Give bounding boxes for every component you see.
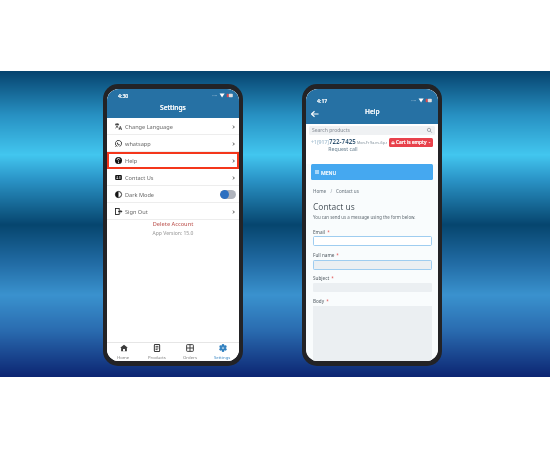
button[interactable]: Home: [313, 188, 327, 194]
staticText: whatsapp: [125, 140, 151, 148]
staticText: 4:17: [317, 97, 328, 104]
button[interactable]: Products: [140, 343, 173, 361]
staticText: Full name: [313, 252, 335, 258]
staticText: Products: [148, 354, 166, 360]
button[interactable]: MENU: [311, 164, 433, 180]
staticText: Change Language: [125, 123, 173, 131]
staticText: Contact us: [336, 188, 359, 194]
staticText: Dark Mode: [125, 191, 155, 199]
staticText: /: [327, 188, 336, 194]
button[interactable]: Search products: [309, 126, 435, 135]
staticText: +1(917): [311, 138, 329, 145]
button[interactable]: Home: [107, 343, 140, 361]
button[interactable]: Settings: [206, 343, 239, 361]
button[interactable]: [313, 236, 432, 246]
staticText: Settings: [160, 103, 186, 112]
staticText: Orders: [183, 354, 197, 360]
staticText: 722-7425: [329, 137, 356, 145]
staticText: *: [326, 229, 330, 235]
button[interactable]: Back: [309, 108, 320, 119]
staticText: *: [335, 252, 339, 258]
staticText: 4:30: [118, 92, 129, 99]
staticText: Contact us: [313, 201, 355, 212]
staticText: Help: [365, 107, 380, 116]
staticText: *: [330, 275, 334, 281]
button[interactable]: Cart is empty: [389, 138, 433, 147]
staticText: Help: [125, 157, 138, 165]
staticText: Mon-Fr 9a.m.-6p.m.: [357, 140, 387, 145]
button[interactable]: Orders: [173, 343, 206, 361]
button[interactable]: [313, 260, 432, 270]
staticText: Contact Us: [125, 174, 154, 182]
staticText: Subject: [313, 275, 330, 281]
button[interactable]: Contact Us: [107, 169, 239, 186]
staticText: Cart is empty: [396, 139, 427, 146]
button[interactable]: Request call: [306, 145, 381, 152]
button[interactable]: Sign Out: [107, 203, 239, 220]
button[interactable]: Change Language: [107, 118, 239, 135]
button[interactable]: Help: [107, 152, 239, 169]
staticText: Search products: [312, 127, 350, 134]
staticText: Body: [313, 298, 325, 304]
staticText: Email: [313, 229, 326, 235]
staticText: You can send us a message using the form…: [313, 214, 416, 220]
staticText: Sign Out: [125, 208, 148, 216]
staticText: Settings: [214, 354, 231, 360]
button[interactable]: whatsapp: [107, 135, 239, 152]
staticText: Home: [117, 354, 130, 360]
button[interactable]: Delete Account: [107, 220, 239, 228]
button[interactable]: Dark Mode: [107, 186, 239, 203]
staticText: *: [325, 298, 329, 304]
staticText: App Version: 15.0: [107, 230, 239, 237]
staticText: MENU: [321, 169, 337, 176]
